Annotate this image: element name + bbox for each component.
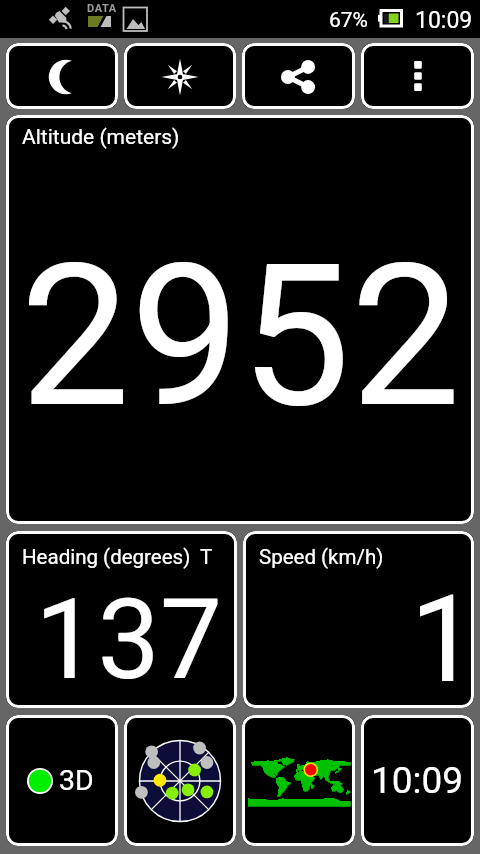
button[interactable]: Heading (degrees) T	[6, 531, 237, 708]
button[interactable]: Clock	[361, 715, 474, 846]
button[interactable]: More options	[361, 43, 474, 109]
staticText: 67%	[329, 8, 368, 33]
staticText: Heading (degrees) T	[22, 545, 213, 569]
button[interactable]: Altitude (meters)	[6, 115, 474, 524]
staticText: Speed (km/h)	[259, 545, 384, 569]
staticText: 10:09	[371, 759, 464, 802]
button[interactable]: World map position	[242, 715, 355, 846]
button[interactable]: Compass	[124, 43, 236, 109]
button[interactable]: Night mode	[6, 43, 118, 109]
button[interactable]: Share	[242, 43, 355, 109]
staticText: 10:09	[415, 7, 473, 34]
button[interactable]: Satellite sky view	[124, 715, 236, 846]
button[interactable]: Speed (km/h)	[243, 531, 474, 708]
staticText: 2952	[20, 222, 461, 452]
button[interactable]: GPS fix type 3D	[6, 715, 118, 846]
staticText: DATA	[87, 2, 117, 15]
staticText: Altitude (meters)	[22, 125, 180, 150]
staticText: 3D	[59, 764, 94, 797]
staticText: 1	[410, 569, 474, 708]
staticText: 137	[35, 575, 223, 705]
